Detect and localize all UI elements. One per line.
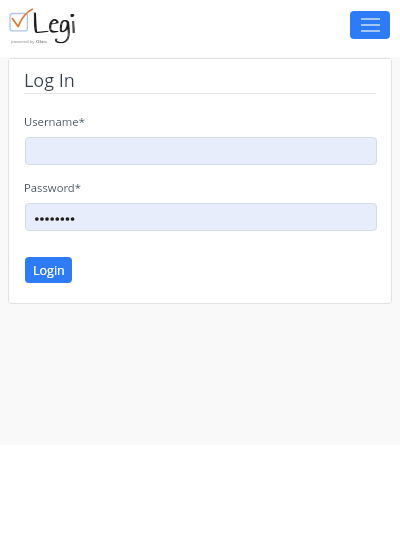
staticText: Login — [33, 262, 65, 279]
button[interactable]: Legi, powered by Okeo - home — [0, 0, 80, 50]
staticText: Legi — [33, 0, 75, 46]
staticText: Log In — [24, 68, 75, 93]
staticText: Okeo — [36, 38, 47, 44]
staticText: Legi — [34, 0, 76, 46]
button[interactable]: Password — [25, 203, 377, 231]
staticText: powered by — [11, 38, 36, 44]
staticText: Password* — [24, 180, 82, 195]
staticText: Username* — [24, 114, 85, 129]
button[interactable]: Open navigation menu — [350, 11, 390, 39]
button[interactable]: Username — [25, 137, 377, 165]
button[interactable]: Login — [25, 257, 72, 283]
